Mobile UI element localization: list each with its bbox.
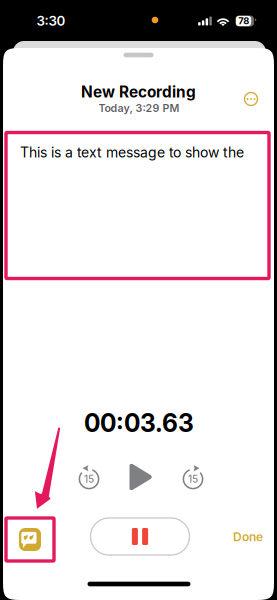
- button[interactable]: Pause recording: [90, 518, 189, 555]
- button[interactable]: Skip back 15 seconds: [77, 465, 101, 489]
- staticText: 15: [84, 473, 94, 485]
- staticText: Today, 3:29 PM: [98, 101, 179, 114]
- staticText: This is a text message to show the: [20, 144, 244, 161]
- staticText: 00:03.63: [84, 408, 194, 438]
- staticText: Done: [233, 530, 263, 544]
- staticText: New Recording: [81, 83, 196, 101]
- staticText: 15: [188, 473, 198, 485]
- staticText: 78: [238, 15, 249, 26]
- button[interactable]: Show transcript: [19, 528, 41, 551]
- button[interactable]: Play: [128, 463, 153, 490]
- staticText: 3:30: [36, 13, 65, 29]
- button[interactable]: More options: [240, 88, 262, 110]
- button[interactable]: Skip forward 15 seconds: [181, 465, 205, 489]
- button[interactable]: Done: [227, 524, 269, 550]
